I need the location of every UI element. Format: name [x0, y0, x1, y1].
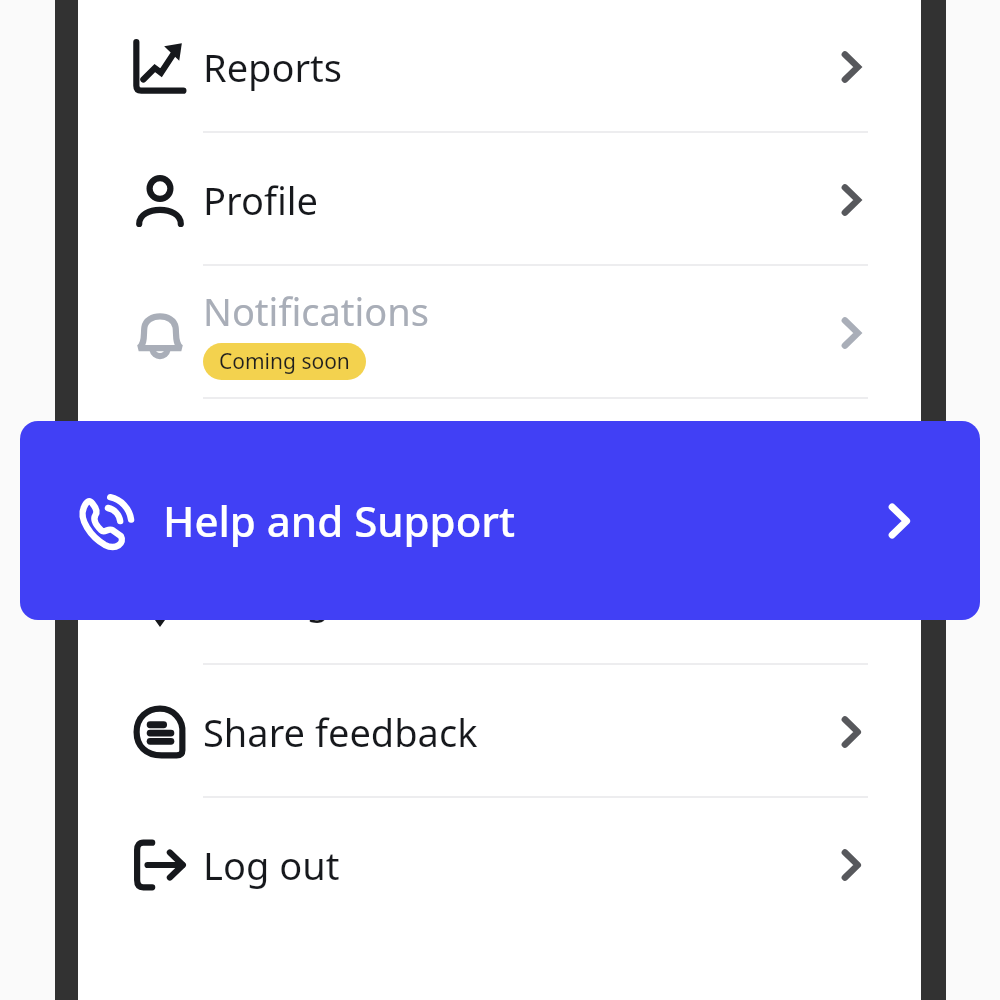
button[interactable]: Reports — [78, 0, 921, 133]
staticText: Notifications — [203, 285, 430, 337]
staticText: Reports — [203, 41, 343, 93]
button[interactable]: Help and Support — [20, 421, 980, 620]
button[interactable]: Log out — [78, 798, 921, 931]
staticText: Log out — [203, 839, 340, 891]
button[interactable]: Share feedback — [78, 665, 921, 798]
staticText: Profile — [203, 174, 319, 226]
staticText: Help and Support — [163, 492, 880, 549]
button[interactable]: Notifications — [78, 266, 921, 399]
staticText: Coming soon — [219, 347, 350, 376]
other: Open Help and Support — [880, 502, 918, 540]
button[interactable]: Profile — [78, 133, 921, 266]
staticText: Share feedback — [203, 706, 478, 758]
staticText: Settings — [203, 573, 348, 625]
button[interactable]: Settings — [78, 532, 921, 665]
